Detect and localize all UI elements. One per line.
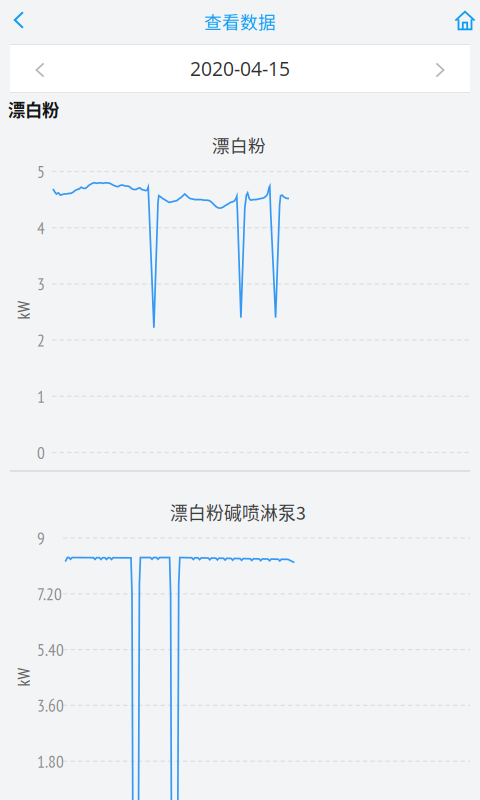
staticText: kW (14, 299, 33, 321)
staticText: 漂白粉碱喷淋泵3 (170, 499, 306, 525)
staticText: 5 (37, 160, 45, 183)
staticText: 2 (37, 329, 45, 351)
staticText: 3.60 (37, 694, 64, 717)
staticText: kW (14, 666, 33, 688)
staticText: 2020-04-15 (190, 55, 290, 82)
staticText: 0 (37, 441, 45, 464)
staticText: 1.80 (37, 750, 64, 772)
staticText: 3 (37, 273, 45, 295)
staticText: 漂白粉 (212, 132, 266, 157)
staticText: 5.40 (37, 638, 64, 661)
staticText: 1 (37, 385, 45, 407)
button[interactable]: Home (443, 0, 480, 42)
button[interactable]: Next day (410, 45, 470, 94)
button[interactable]: Back (0, 0, 41, 42)
staticText: 漂白粉 (8, 96, 59, 122)
staticText: 7.20 (37, 583, 62, 605)
staticText: 4 (37, 216, 45, 239)
button[interactable]: Previous day (10, 45, 70, 94)
staticText: 查看数据 (204, 8, 276, 34)
staticText: 9 (37, 527, 45, 549)
